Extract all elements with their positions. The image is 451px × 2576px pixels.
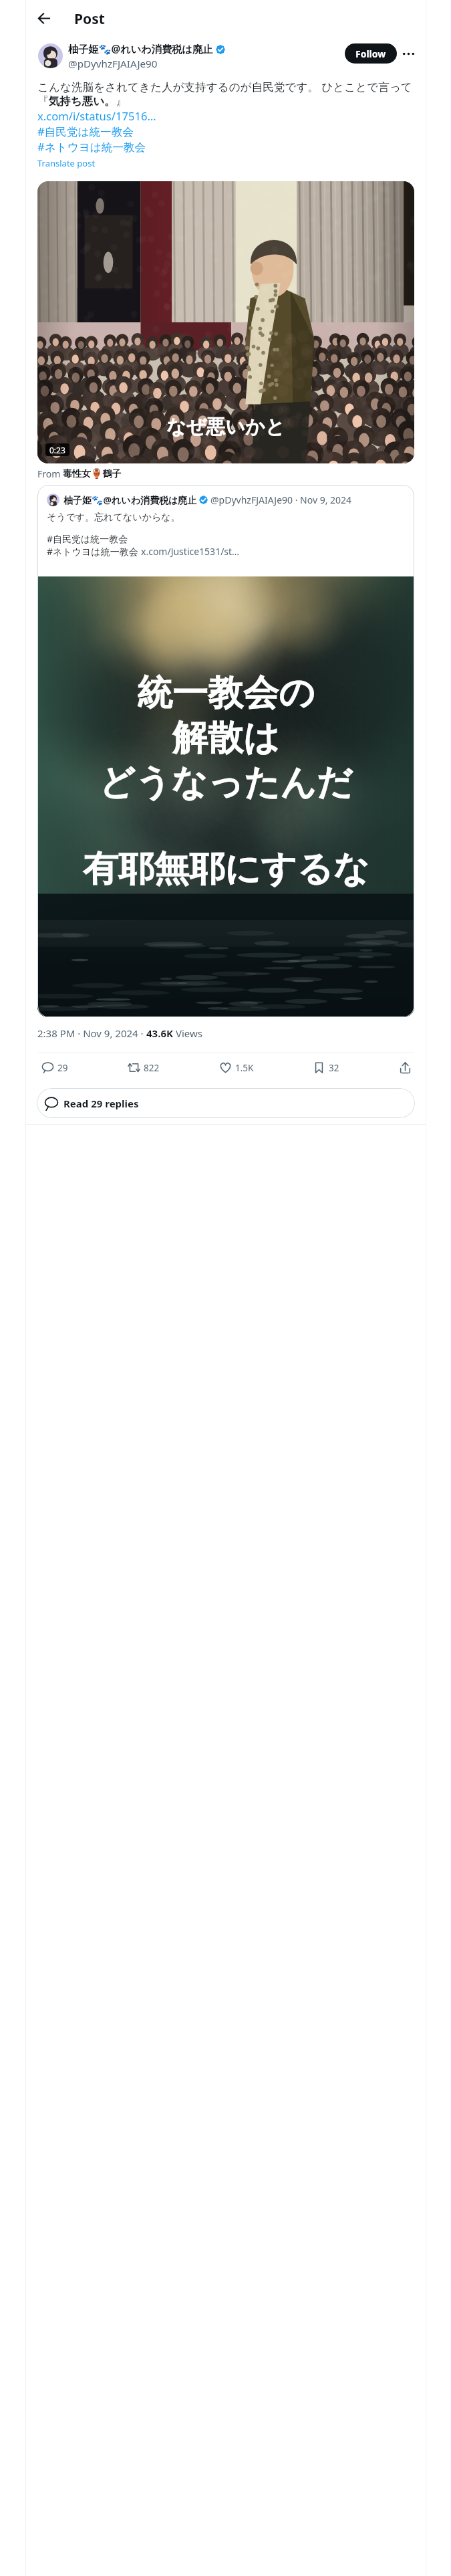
staticText: 1.5K <box>235 1062 254 1074</box>
button[interactable]: 柚子姫🐾@れいわ消費税は廃止 <box>37 485 414 1017</box>
button[interactable]: More options <box>397 42 420 65</box>
staticText: 43.6K <box>146 1027 173 1040</box>
staticText: #ネトウヨは統一教会 <box>47 545 141 558</box>
staticText: どうなったんだ <box>99 760 353 805</box>
staticText: 822 <box>144 1062 160 1074</box>
button[interactable]: Like <box>218 1061 255 1075</box>
staticText: 柚子姫🐾@れいわ消費税は廃止 <box>63 494 197 506</box>
staticText: 柚子姫🐾@れいわ消費税は廃止 <box>68 42 213 56</box>
staticText: Post <box>74 9 105 29</box>
staticText: x.com/i/status/17516… <box>37 108 156 124</box>
button[interactable]: Share <box>398 1061 412 1075</box>
staticText: こんな洗脳をされてきた人が支持するのが自民党です。 ひとことで言って <box>37 79 412 94</box>
staticText: 統一教会の <box>137 671 315 716</box>
staticText: 有耶無耶にするな <box>83 847 369 891</box>
staticText: 毒性女🏺鶴子 <box>63 468 122 480</box>
staticText: 29 <box>57 1062 68 1074</box>
staticText: 0:23 <box>49 445 65 455</box>
button[interactable]: Read 29 replies <box>37 1088 415 1118</box>
staticText: @pDyvhzFJAIAJe90 · Nov 9, 2024 <box>210 494 352 506</box>
button[interactable]: Reply <box>41 1061 69 1075</box>
staticText: そうです。忘れてないからな。 <box>47 512 180 524</box>
staticText: 32 <box>329 1062 339 1074</box>
staticText: Views <box>173 1027 202 1040</box>
staticText: #自民党は統一教会 <box>47 532 128 545</box>
button[interactable]: Follow <box>345 43 397 64</box>
staticText: Read 29 replies <box>63 1097 139 1110</box>
staticText: Follow <box>355 47 386 60</box>
button[interactable]: Repost <box>127 1061 160 1075</box>
staticText: #自民党は統一教会 <box>37 124 134 139</box>
staticText: なぜ悪いかと <box>166 415 285 439</box>
staticText: #ネトウヨは統一教会 <box>37 139 146 154</box>
staticText: 2:38 PM · Nov 9, 2024 · <box>37 1027 146 1040</box>
staticText: x.com/Justice1531/st… <box>141 545 240 558</box>
staticText: @pDyvhzFJAIAJe90 <box>68 57 158 71</box>
staticText: From <box>37 467 63 480</box>
button[interactable]: Translate post <box>37 157 96 169</box>
staticText: 解散は <box>172 716 280 760</box>
button[interactable]: Back <box>31 6 55 30</box>
button[interactable]: Play video <box>37 181 414 463</box>
staticText: 『気持ち悪い。』 <box>37 94 127 108</box>
button[interactable]: Bookmark <box>312 1061 340 1075</box>
